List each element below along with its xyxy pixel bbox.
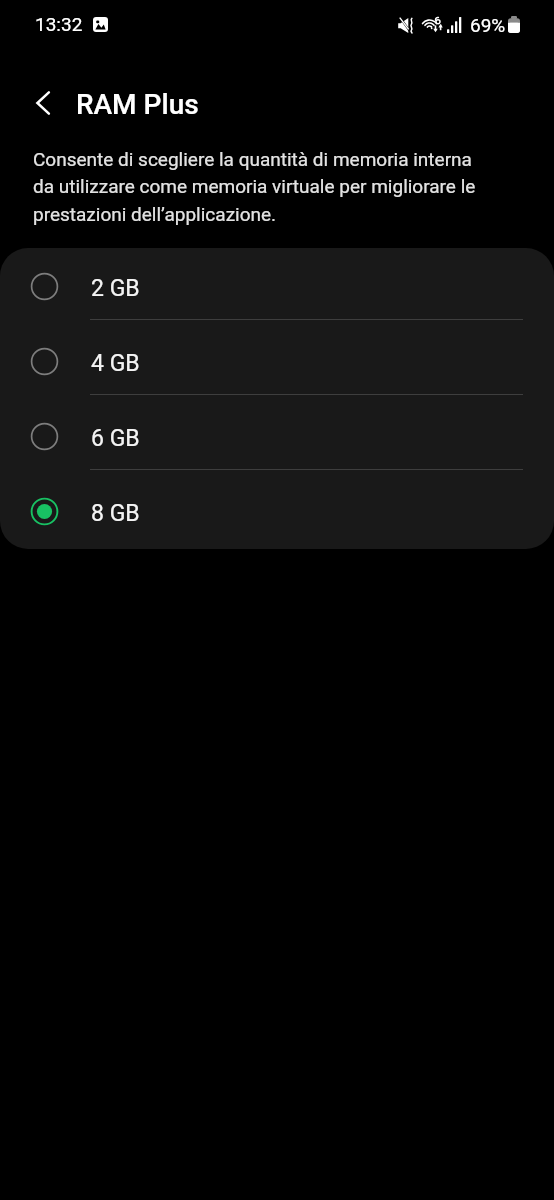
staticText: 6 GB	[91, 425, 140, 452]
staticText: 69%	[470, 14, 506, 36]
button[interactable]: 2 GB	[0, 248, 554, 323]
button[interactable]: 8 GB	[0, 473, 554, 548]
staticText: 4 GB	[91, 350, 140, 377]
button[interactable]: 4 GB	[0, 323, 554, 398]
staticText: 8 GB	[91, 500, 140, 527]
staticText: RAM Plus	[76, 88, 199, 121]
staticText: Consente di scegliere la quantità di mem…	[33, 148, 483, 226]
staticText: 2 GB	[91, 275, 140, 302]
button[interactable]: 6 GB	[0, 398, 554, 473]
staticText: 13:32	[35, 13, 83, 35]
button[interactable]: Back	[21, 81, 64, 124]
